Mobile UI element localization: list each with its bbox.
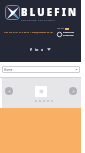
staticText: in [35, 47, 39, 51]
button[interactable]: Bluefin logo [5, 5, 20, 20]
button[interactable]: Twitter [47, 47, 51, 51]
staticText: f [30, 47, 32, 51]
staticText: Home [4, 68, 13, 72]
staticText: IN PEOPLE [63, 34, 74, 37]
button[interactable]: LinkedIn [35, 47, 39, 51]
staticText: SOFTWARE SOLUTIONS [21, 19, 56, 22]
staticText: g+ [41, 47, 45, 51]
button[interactable]: Google Plus [41, 47, 45, 51]
button[interactable]: Next slide [69, 87, 77, 95]
staticText: We Are [57, 27, 64, 30]
button[interactable]: Home [2, 66, 80, 73]
staticText: BLUEFIN [21, 6, 79, 19]
button[interactable]: Call Us: 0121 517 0810 | info@bluefin.co… [4, 30, 53, 33]
button[interactable] [35, 86, 47, 97]
button[interactable]: Facebook [29, 47, 33, 51]
staticText: INVESTORS [63, 31, 75, 34]
button[interactable]: Previous slide [5, 87, 13, 95]
